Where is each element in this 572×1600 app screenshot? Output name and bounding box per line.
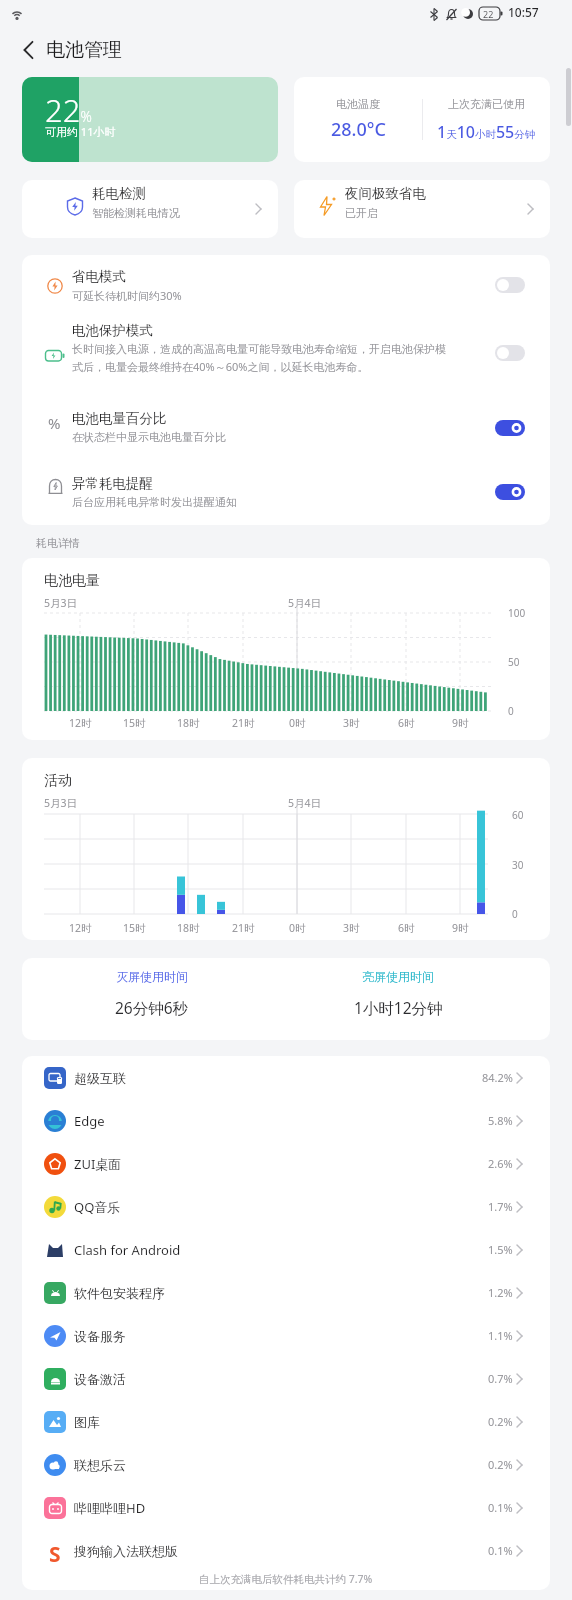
staticText: 84.2% [482, 1070, 513, 1085]
button[interactable] [12, 34, 44, 66]
staticText: 上次充满已使用 [448, 97, 525, 111]
staticText: 0 [512, 907, 518, 921]
staticText: 电池保护模式 [72, 322, 153, 339]
button[interactable] [495, 484, 525, 500]
button[interactable]: 设备服务 [22, 1314, 550, 1357]
staticText: 60 [512, 808, 524, 822]
staticText: 后台应用耗电异常时发出提醒通知 [72, 495, 237, 509]
staticText: 22 [483, 8, 494, 20]
staticText: 0.1% [488, 1500, 513, 1515]
staticText: 2.6% [488, 1156, 513, 1171]
staticText: 在状态栏中显示电池电量百分比 [72, 430, 226, 444]
staticText: 1小时12分钟 [354, 997, 443, 1018]
staticText: 灭屏使用时间 [116, 969, 188, 984]
staticText: 可延长待机时间约30% [72, 288, 182, 303]
staticText: 0时 [289, 716, 306, 730]
staticText: 0时 [289, 921, 306, 935]
staticText: 夜间极致省电 [345, 185, 426, 202]
staticText: 0 [508, 704, 514, 718]
staticText: 6时 [398, 921, 415, 935]
staticText: 省电模式 [72, 268, 126, 285]
button[interactable]: S [22, 1529, 550, 1572]
staticText: 电池管理 [46, 38, 122, 62]
staticText: 活动 [44, 772, 72, 790]
staticText: 100 [508, 606, 526, 620]
staticText: 智能检测耗电情况 [92, 206, 180, 220]
staticText: 可用约 11小时 [45, 124, 116, 139]
button[interactable]: 异常耗电提醒 [22, 470, 550, 522]
button[interactable]: 电池温度 [294, 77, 550, 162]
staticText: 电池温度 [336, 97, 380, 111]
button[interactable]: Edge [22, 1099, 550, 1142]
staticText: 18时 [177, 716, 200, 730]
staticText: 5月3日 [44, 796, 78, 810]
button[interactable]: QQ音乐 [22, 1185, 550, 1228]
button[interactable] [495, 277, 525, 293]
staticText: 1.1% [488, 1328, 513, 1343]
staticText: 26分钟6秒 [115, 997, 189, 1018]
staticText: 3时 [343, 921, 360, 935]
button[interactable]: Clash for Android [22, 1228, 550, 1271]
staticText: 15时 [123, 921, 146, 935]
staticText: 已开启 [345, 206, 378, 220]
staticText: 5月4日 [288, 796, 322, 810]
button[interactable]: 软件包安装程序 [22, 1271, 550, 1314]
staticText: 50 [508, 655, 520, 669]
staticText: QQ音乐 [74, 1198, 121, 1216]
staticText: 0.1% [488, 1543, 513, 1558]
button[interactable]: 耗电检测 [22, 180, 278, 238]
staticText: 28.0°C [331, 117, 386, 142]
staticText: 9时 [452, 921, 469, 935]
staticText: 耗电检测 [92, 185, 146, 202]
button[interactable]: 省电模式 [22, 263, 550, 315]
staticText: Edge [74, 1112, 105, 1130]
staticText: ZUI桌面 [74, 1155, 122, 1173]
staticText: 长时间接入电源，造成的高温高电量可能导致电池寿命缩短，开启电池保护模 [72, 342, 446, 356]
staticText: 亮屏使用时间 [362, 969, 434, 984]
button[interactable]: 设备激活 [22, 1357, 550, 1400]
staticText: 自上次充满电后软件耗电共计约 7.7% [199, 1572, 373, 1586]
staticText: 21时 [232, 921, 255, 935]
staticText: 0.2% [488, 1457, 513, 1472]
button[interactable]: 22% [22, 77, 278, 162]
staticText: 22% [45, 89, 92, 131]
staticText: 1.5% [488, 1242, 513, 1257]
staticText: 5.8% [488, 1113, 513, 1128]
staticText: 10:57 [508, 4, 539, 20]
staticText: 0.7% [488, 1371, 513, 1386]
staticText: 电池电量百分比 [72, 410, 167, 427]
staticText: 1.7% [488, 1199, 513, 1214]
staticText: 软件包安装程序 [74, 1285, 165, 1301]
staticText: Clash for Android [74, 1241, 181, 1259]
staticText: 搜狗输入法联想版 [74, 1543, 178, 1559]
button[interactable]: 夜间极致省电 [294, 180, 550, 238]
button[interactable] [495, 345, 525, 361]
staticText: 耗电详情 [36, 536, 80, 550]
button[interactable]: 图库 [22, 1400, 550, 1443]
staticText: 异常耗电提醒 [72, 475, 153, 492]
staticText: 图库 [74, 1414, 100, 1430]
staticText: 电池电量 [44, 572, 100, 590]
staticText: 式后，电量会最终维持在40%～60%之间，以延长电池寿命。 [72, 359, 369, 374]
button[interactable] [495, 420, 525, 436]
staticText: 6时 [398, 716, 415, 730]
button[interactable]: 哔哩哔哩HD [22, 1486, 550, 1529]
button[interactable]: 联想乐云 [22, 1443, 550, 1486]
staticText: 18时 [177, 921, 200, 935]
staticText: 哔哩哔哩HD [74, 1499, 146, 1517]
button[interactable]: 超级互联 [22, 1056, 550, 1099]
staticText: 12时 [69, 716, 92, 730]
staticText: 设备激活 [74, 1371, 126, 1387]
staticText: 3时 [343, 716, 360, 730]
staticText: 联想乐云 [74, 1457, 126, 1473]
staticText: S [49, 1540, 61, 1562]
staticText: 9时 [452, 716, 469, 730]
staticText: 15时 [123, 716, 146, 730]
button[interactable]: ZUI桌面 [22, 1142, 550, 1185]
button[interactable]: 电池保护模式 [22, 320, 550, 380]
button[interactable]: % [22, 405, 550, 457]
staticText: 30 [512, 858, 524, 872]
staticText: 1.2% [488, 1285, 513, 1300]
staticText: 12时 [69, 921, 92, 935]
staticText: 21时 [232, 716, 255, 730]
